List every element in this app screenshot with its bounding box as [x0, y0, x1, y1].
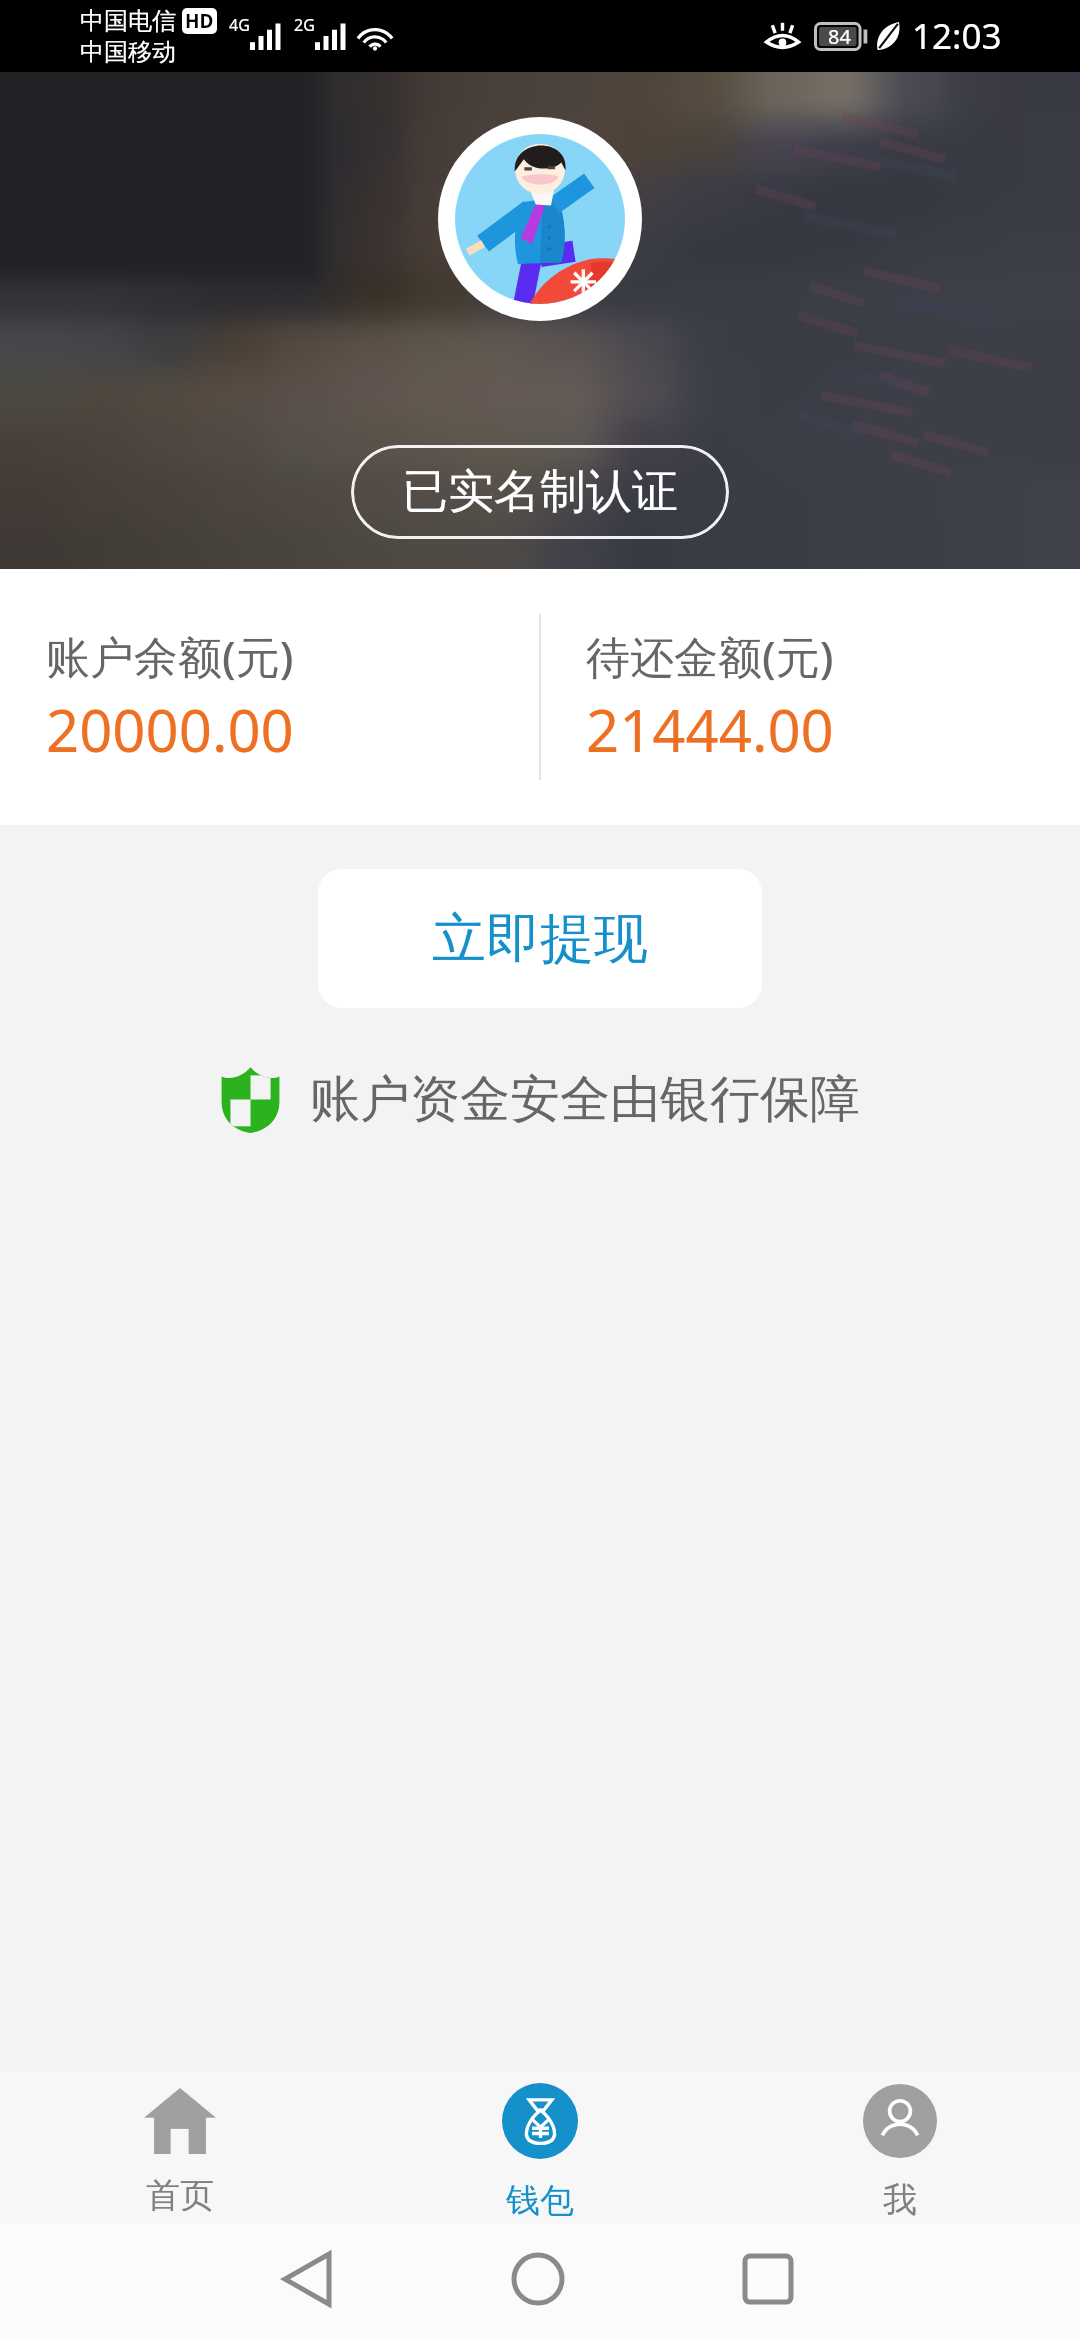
button[interactable]: 已实名制认证 [351, 445, 729, 539]
staticText: 立即提现 [432, 905, 648, 973]
staticText: 中国电信 [80, 6, 176, 36]
button[interactable]: 首页 [0, 2072, 360, 2224]
button[interactable]: Profile avatar [438, 117, 642, 321]
staticText: 首页 [146, 2174, 214, 2217]
staticText: 账户余额(元) [46, 626, 294, 686]
staticText: 账户资金安全由银行保障 [310, 1068, 860, 1131]
staticText: 待还金额(元) [586, 626, 834, 686]
staticText: 钱包 [506, 2179, 574, 2222]
staticText: 84 [828, 23, 851, 50]
staticText: HD [185, 8, 214, 34]
staticText: 20000.00 [46, 690, 294, 769]
staticText: 2G [294, 14, 315, 36]
button[interactable]: 立即提现 [318, 869, 762, 1008]
staticText: 中国移动 [80, 37, 176, 67]
staticText: 12:03 [912, 12, 1002, 60]
button[interactable]: 钱包 [360, 2072, 720, 2224]
staticText: 我 [883, 2178, 917, 2221]
button[interactable]: 我 [720, 2072, 1080, 2224]
staticText: 4G [229, 14, 250, 36]
staticText: 21444.00 [586, 690, 834, 769]
staticText: 已实名制认证 [402, 463, 678, 521]
